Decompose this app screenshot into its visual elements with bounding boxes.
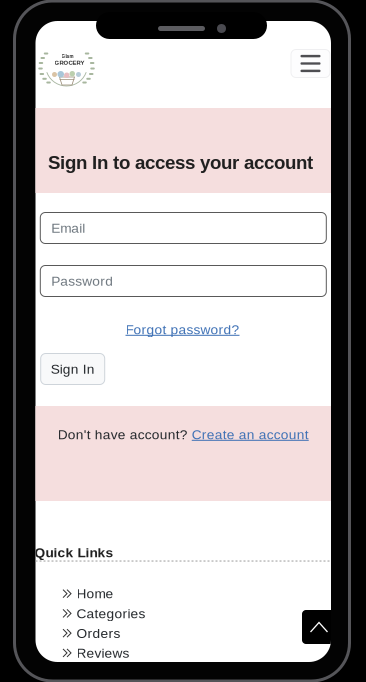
button[interactable]: Email [40,212,326,243]
button[interactable]: Create an account [192,427,309,442]
button[interactable]: Orders [62,625,120,641]
staticText: Glam [61,54,73,59]
staticText: GROCERY [54,59,84,66]
staticText: Password [51,273,113,289]
staticText: Forgot password? [125,322,239,337]
staticText: Don't have account? [58,427,192,442]
staticText: Orders [76,625,120,641]
button[interactable]: Categories [62,606,145,621]
button[interactable]: Menu [291,49,330,77]
button[interactable]: Home [62,586,113,601]
staticText: Home [76,586,113,601]
staticText: Sign In to access your account [48,152,313,173]
staticText: Quick Links [34,545,113,560]
button[interactable]: Sign In [41,353,105,384]
button[interactable]: Back to top [302,610,336,644]
staticText: Categories [76,606,145,621]
button[interactable]: Forgot password? [125,322,239,337]
staticText: Email [51,220,85,236]
staticText: Sign In [51,361,95,377]
staticText: Create an account [192,427,309,442]
button[interactable]: Reviews [62,645,129,661]
staticText: Reviews [76,645,129,661]
button[interactable]: Password [40,265,326,296]
